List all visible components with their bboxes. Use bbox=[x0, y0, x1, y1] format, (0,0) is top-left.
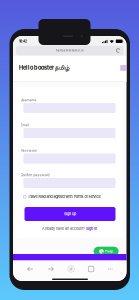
staticText: Hello booster தமிழ் bbox=[19, 64, 70, 72]
staticText: hellosmmtamil.in bbox=[56, 49, 84, 52]
staticText: Username bbox=[20, 98, 36, 102]
button[interactable]: Sign up bbox=[24, 207, 115, 221]
button[interactable]: hellosmmtamil.in bbox=[16, 46, 123, 55]
button[interactable]: Menu bbox=[104, 65, 127, 70]
staticText: Email bbox=[20, 123, 29, 127]
staticText: Help bbox=[105, 249, 113, 253]
button[interactable]: Tabs bbox=[88, 266, 94, 272]
staticText: Password bbox=[20, 149, 36, 152]
button[interactable]: I have read and agreed with Terms of ser… bbox=[23, 194, 118, 199]
staticText: Already have an account? bbox=[42, 226, 86, 231]
button[interactable]: Back bbox=[27, 266, 33, 272]
staticText: I have read and agreed with Terms of ser… bbox=[28, 194, 101, 199]
button[interactable]: New Tab bbox=[68, 266, 74, 272]
button[interactable]: Help bbox=[94, 247, 119, 256]
staticText: Confirm password bbox=[20, 173, 49, 177]
button[interactable]: Forward bbox=[47, 266, 54, 272]
button[interactable]: Sign in bbox=[86, 226, 97, 231]
staticText: Sign up bbox=[64, 212, 76, 216]
staticText: 10:42 bbox=[19, 39, 27, 43]
staticText: Sign in bbox=[86, 226, 97, 231]
button[interactable]: More bbox=[108, 268, 112, 269]
